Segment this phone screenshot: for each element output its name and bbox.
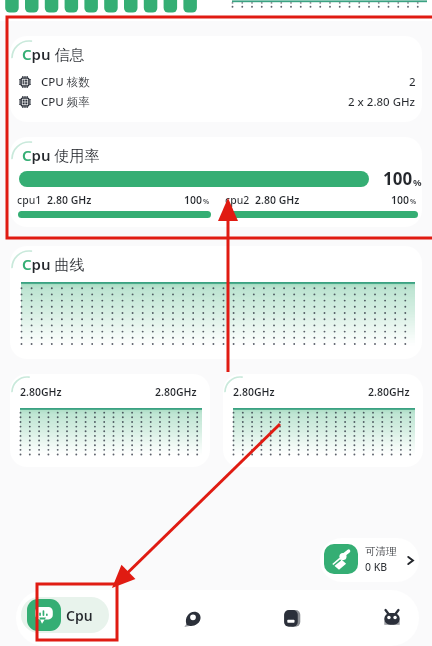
- staticText: 100: [391, 193, 410, 207]
- staticText: 2.80 GHz: [255, 193, 300, 207]
- staticText: 2.80GHz: [20, 385, 62, 399]
- button[interactable]: CPU 频率: [10, 91, 422, 113]
- staticText: 2.80GHz: [233, 385, 275, 399]
- button[interactable]: Cpu: [21, 597, 109, 633]
- staticText: 100: [383, 167, 413, 190]
- staticText: %: [413, 176, 422, 189]
- staticText: Cpu 信息: [22, 44, 85, 64]
- staticText: Cpu 使用率: [22, 145, 100, 165]
- staticText: 0 KB: [365, 560, 388, 574]
- staticText: Cpu: [66, 606, 93, 625]
- button[interactable]: CPU 核数: [10, 71, 422, 93]
- button[interactable]: Apps: [376, 602, 408, 634]
- staticText: 100: [184, 193, 203, 207]
- staticText: %: [410, 197, 417, 207]
- staticText: 可清理: [365, 545, 397, 558]
- staticText: cpu1: [17, 193, 42, 207]
- staticText: cpu2: [225, 193, 250, 207]
- button[interactable]: Battery: [276, 602, 308, 634]
- staticText: 2: [409, 74, 416, 90]
- staticText: %: [203, 197, 210, 207]
- button[interactable]: Boost: [177, 602, 209, 634]
- staticText: Cpu 曲线: [22, 254, 85, 274]
- staticText: CPU 核数: [41, 74, 90, 90]
- staticText: 2 x 2.80 GHz: [348, 94, 416, 110]
- button[interactable]: 可清理: [320, 538, 419, 582]
- staticText: 2.80GHz: [368, 385, 410, 399]
- staticText: CPU 频率: [41, 94, 90, 110]
- staticText: 2.80GHz: [155, 385, 197, 399]
- staticText: 2.80 GHz: [47, 193, 92, 207]
